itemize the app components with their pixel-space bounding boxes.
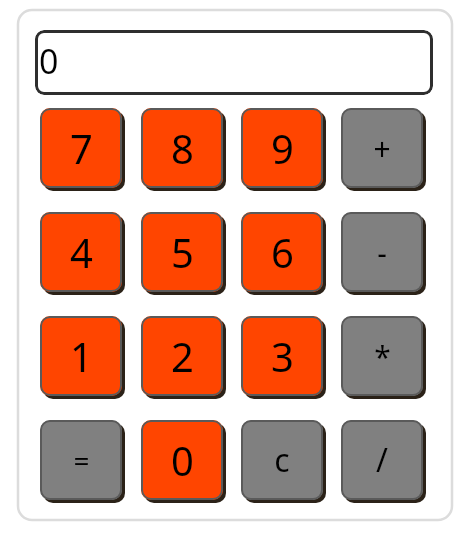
staticText: = <box>73 441 90 479</box>
button[interactable]: Equals <box>40 420 122 500</box>
button[interactable]: Display <box>35 30 433 95</box>
button[interactable]: Multiply <box>341 316 423 396</box>
button[interactable]: Nine <box>241 108 323 188</box>
button[interactable]: Zero <box>141 420 223 500</box>
button[interactable]: Six <box>241 212 323 292</box>
button[interactable]: Seven <box>40 108 122 188</box>
button[interactable]: One <box>40 316 122 396</box>
staticText: + <box>373 128 391 169</box>
staticText: - <box>377 232 387 273</box>
button[interactable]: Three <box>241 316 323 396</box>
button[interactable]: Clear <box>241 420 323 500</box>
button[interactable]: Five <box>141 212 223 292</box>
staticText: 7 <box>70 121 93 175</box>
button[interactable]: Four <box>40 212 122 292</box>
button[interactable]: Eight <box>141 108 223 188</box>
staticText: 9 <box>271 121 294 175</box>
button[interactable]: Plus <box>341 108 423 188</box>
staticText: 0 <box>171 433 194 487</box>
staticText: / <box>376 438 388 482</box>
button[interactable]: Minus <box>341 212 423 292</box>
staticText: 4 <box>70 225 93 279</box>
staticText: 0 <box>39 38 59 84</box>
staticText: 2 <box>171 329 194 383</box>
staticText: 6 <box>271 225 294 279</box>
staticText: c <box>274 438 290 482</box>
button[interactable]: Divide <box>341 420 423 500</box>
staticText: * <box>374 336 391 377</box>
button[interactable]: Two <box>141 316 223 396</box>
staticText: 5 <box>171 225 194 279</box>
staticText: 3 <box>271 329 294 383</box>
staticText: 8 <box>171 121 194 175</box>
staticText: 1 <box>70 329 93 383</box>
